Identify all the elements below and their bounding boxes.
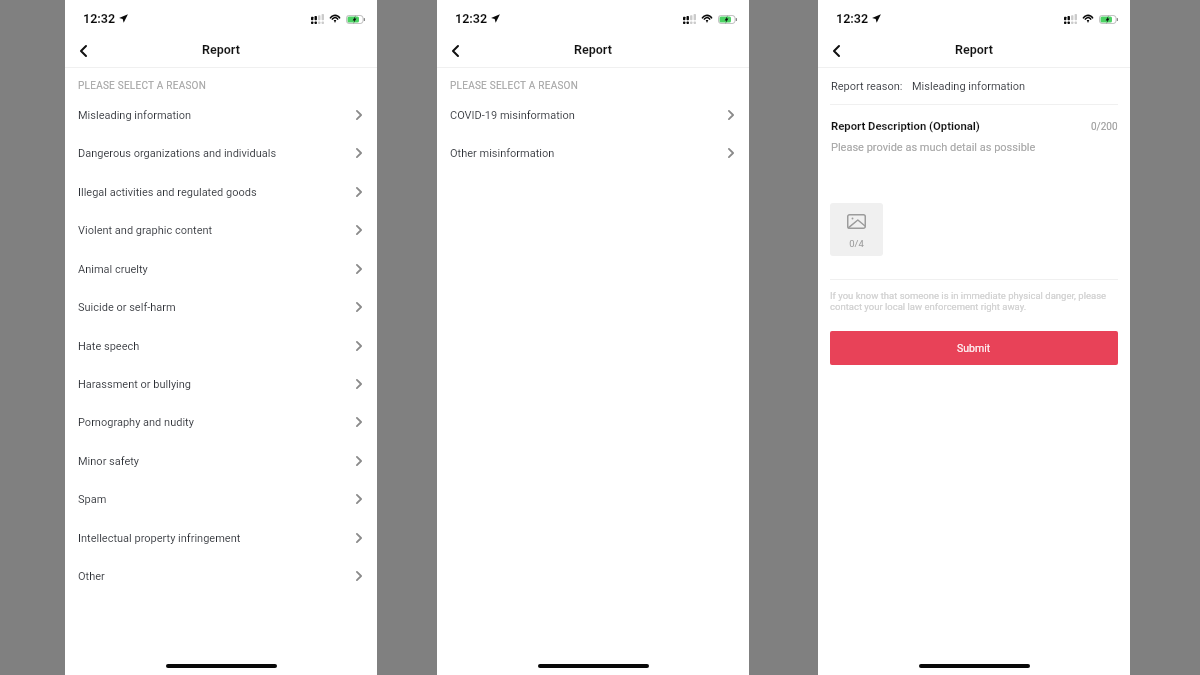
button[interactable]: Violent and graphic content — [65, 211, 377, 249]
staticText: Misleading information — [912, 80, 1026, 93]
button[interactable]: Minor safety — [65, 442, 377, 480]
staticText: Report Description (Optional) — [831, 120, 1091, 133]
staticText: Harassment or bullying — [78, 378, 356, 391]
staticText: Please provide as much detail as possibl… — [831, 141, 1036, 154]
staticText: 0/4 — [830, 238, 883, 249]
button[interactable]: Spam — [65, 480, 377, 518]
button[interactable]: Back — [72, 39, 94, 63]
staticText: Other misinformation — [450, 147, 728, 160]
button[interactable]: Intellectual property infringement — [65, 519, 377, 557]
button[interactable]: Pornography and nudity — [65, 403, 377, 441]
button[interactable]: Dangerous organizations and individuals — [65, 134, 377, 172]
staticText: COVID-19 misinformation — [450, 109, 728, 122]
staticText: Violent and graphic content — [78, 224, 356, 237]
button[interactable]: COVID-19 misinformation — [437, 96, 749, 134]
staticText: Misleading information — [78, 109, 356, 122]
button[interactable]: Harassment or bullying — [65, 365, 377, 403]
staticText: Hate speech — [78, 340, 356, 353]
staticText: 0/200 — [1091, 121, 1118, 133]
staticText: Submit — [957, 342, 991, 354]
staticText: Report reason: — [831, 80, 903, 93]
staticText: 12:32 — [455, 11, 488, 26]
staticText: Report — [955, 42, 993, 57]
staticText: Dangerous organizations and individuals — [78, 147, 356, 160]
button[interactable]: Misleading information — [65, 96, 377, 134]
staticText: Spam — [78, 493, 356, 506]
staticText: Suicide or self-harm — [78, 301, 356, 314]
staticText: PLEASE SELECT A REASON — [450, 80, 579, 92]
staticText: Minor safety — [78, 455, 356, 468]
staticText: Intellectual property infringement — [78, 532, 356, 545]
staticText: PLEASE SELECT A REASON — [78, 80, 207, 92]
button[interactable]: Animal cruelty — [65, 250, 377, 288]
staticText: 12:32 — [83, 11, 116, 26]
button[interactable]: Back — [444, 39, 466, 63]
button[interactable]: Other — [65, 557, 377, 595]
staticText: Illegal activities and regulated goods — [78, 186, 356, 199]
staticText: Report — [574, 42, 612, 57]
staticText: 12:32 — [836, 11, 869, 26]
staticText: If you know that someone is in immediate… — [830, 290, 1118, 312]
button[interactable]: Other misinformation — [437, 134, 749, 172]
button[interactable]: Suicide or self-harm — [65, 288, 377, 326]
button[interactable]: Hate speech — [65, 327, 377, 365]
staticText: Pornography and nudity — [78, 416, 356, 429]
staticText: Other — [78, 570, 356, 583]
staticText: Animal cruelty — [78, 263, 356, 276]
staticText: Report — [202, 42, 240, 57]
button[interactable]: Submit — [830, 331, 1118, 365]
button[interactable]: Illegal activities and regulated goods — [65, 173, 377, 211]
button[interactable]: Back — [825, 39, 847, 63]
button[interactable]: Add photo — [830, 203, 883, 256]
